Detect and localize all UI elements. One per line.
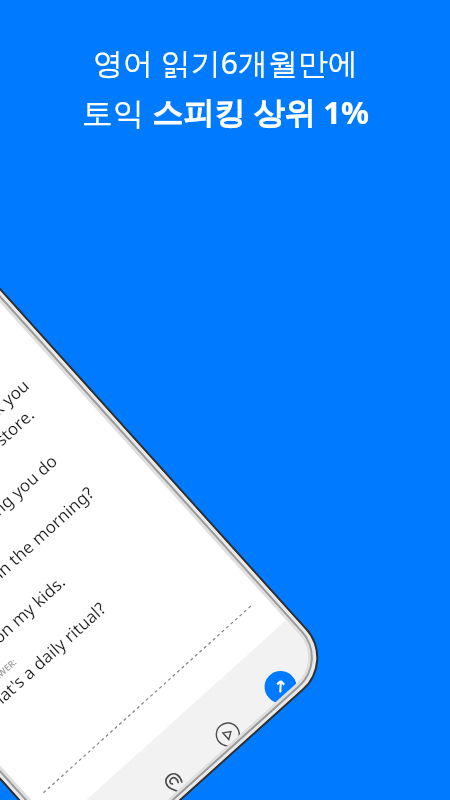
staticText: 토익 스피킹 상위 1% (82, 91, 369, 133)
staticText: you wake up in the morning? (0, 481, 99, 653)
other: 다음 (258, 664, 298, 703)
staticText: INTERVIEWER: (0, 655, 19, 705)
staticText: What's a daily ritual? (0, 596, 111, 723)
button[interactable]: 스크랩 (84, 791, 154, 800)
button[interactable]: 영상 (188, 697, 259, 764)
staticText: 영어 읽기6개월만에 (93, 42, 358, 83)
staticText: …came from America to ask you (0, 374, 34, 562)
button[interactable]: 다음 (239, 647, 312, 717)
staticText: 3 questions in your new store. (0, 403, 39, 581)
button[interactable]: 발음 (136, 744, 206, 800)
staticText: What's the first thing you do when (0, 420, 110, 635)
staticText: I check on my kids. (0, 570, 70, 688)
